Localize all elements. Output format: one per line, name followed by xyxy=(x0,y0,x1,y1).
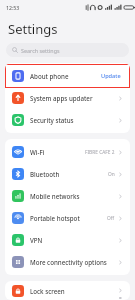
button[interactable]: About phone xyxy=(5,65,130,87)
staticText: Search settings xyxy=(21,47,60,54)
staticText: Update xyxy=(101,72,121,80)
staticText: Settings xyxy=(8,20,58,38)
staticText: Off xyxy=(107,215,115,222)
button[interactable]: Security status xyxy=(5,109,130,131)
staticText: About phone xyxy=(30,72,101,80)
button[interactable]: Search settings xyxy=(6,43,129,57)
button[interactable]: Mobile networks xyxy=(5,185,130,207)
staticText: System apps updater xyxy=(30,94,118,102)
button[interactable]: Bluetooth xyxy=(5,163,130,185)
button[interactable]: More connectivity options xyxy=(5,251,130,273)
staticText: 12:53 xyxy=(6,4,20,11)
staticText: Security status xyxy=(30,116,118,124)
staticText: Wi-Fi xyxy=(30,148,85,156)
staticText: FIBRE CAFE 2 xyxy=(85,149,115,156)
button[interactable]: System apps updater xyxy=(5,87,130,109)
staticText: Bluetooth xyxy=(30,170,108,178)
staticText: VPN xyxy=(30,236,118,244)
staticText: On xyxy=(108,171,115,178)
button[interactable]: VPN xyxy=(5,229,130,251)
staticText: More connectivity options xyxy=(30,258,118,266)
button[interactable]: Portable hotspot xyxy=(5,207,130,229)
button[interactable]: Wi-Fi xyxy=(5,141,130,163)
staticText: Lock screen xyxy=(30,287,118,295)
staticText: Portable hotspot xyxy=(30,214,107,222)
staticText: Mobile networks xyxy=(30,192,118,200)
button[interactable]: Lock screen xyxy=(5,283,130,298)
